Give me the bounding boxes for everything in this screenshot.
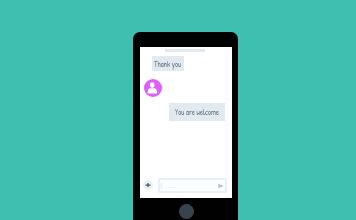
staticText: Thank you — [154, 59, 182, 69]
button[interactable]: Message input — [158, 178, 227, 193]
button[interactable]: Send — [215, 180, 227, 192]
button[interactable]: Thank you — [152, 56, 184, 71]
button[interactable]: Attach — [143, 180, 153, 190]
button[interactable]: Home — [179, 204, 194, 219]
button[interactable]: Contact avatar — [144, 79, 162, 97]
staticText: You are welcome — [175, 107, 220, 117]
button[interactable]: You are welcome — [169, 103, 225, 121]
